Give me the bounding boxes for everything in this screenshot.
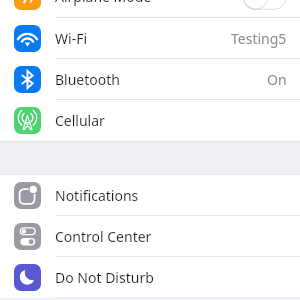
staticText: Do Not Disturb <box>55 268 154 287</box>
button[interactable]: Notifications <box>0 175 300 216</box>
button[interactable]: Wi-Fi <box>0 18 300 59</box>
staticText: Wi-Fi <box>55 29 88 48</box>
staticText: Bluetooth <box>55 70 120 89</box>
button[interactable]: Airplane Mode <box>0 0 300 17</box>
button[interactable]: Cellular <box>0 100 300 141</box>
staticText: On <box>267 70 287 89</box>
button[interactable]: Bluetooth <box>0 59 300 100</box>
button[interactable]: Airplane Mode toggle <box>242 0 287 10</box>
button[interactable]: Do Not Disturb <box>0 257 300 298</box>
staticText: Control Center <box>55 227 152 246</box>
button[interactable]: Control Center <box>0 216 300 257</box>
staticText: Airplane Mode <box>55 0 152 6</box>
staticText: Notifications <box>55 186 139 205</box>
staticText: Cellular <box>55 111 105 130</box>
staticText: Testing5 <box>231 29 287 48</box>
